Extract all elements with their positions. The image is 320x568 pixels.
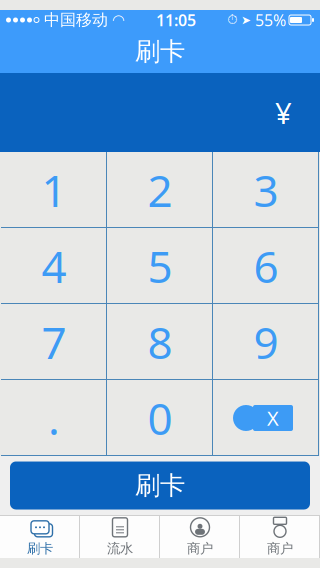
staticText: 商户 [267,540,293,557]
staticText: 4 [41,237,66,295]
staticText: . [48,389,60,447]
button[interactable]: 商户 [240,515,320,558]
staticText: ¥ [275,93,292,132]
staticText: 8 [147,313,172,371]
button[interactable]: 8 [107,304,213,380]
staticText: 刷卡 [27,540,53,557]
button[interactable]: . [1,380,107,456]
button[interactable]: 7 [1,304,107,380]
button[interactable]: 6 [213,228,319,304]
staticText: X [267,405,279,431]
button[interactable]: 2 [107,152,213,228]
staticText: 55% [255,9,286,31]
staticText: 中国移动 [44,10,108,30]
staticText: 流水 [107,540,133,557]
staticText: 3 [253,161,278,219]
staticText: 9 [253,313,278,371]
button[interactable]: 刷卡 [10,461,310,509]
staticText: 刷卡 [135,36,185,67]
button[interactable]: 9 [213,304,319,380]
staticText: 刷卡 [135,470,185,501]
button[interactable]: Delete [213,380,319,456]
button[interactable]: 流水 [80,515,160,558]
staticText: 5 [147,237,172,295]
button[interactable]: 5 [107,228,213,304]
staticText: 11:05 [156,9,196,31]
button[interactable]: 1 [1,152,107,228]
staticText: 1 [41,161,66,219]
staticText: 6 [253,237,278,295]
staticText: 0 [147,389,172,447]
button[interactable]: 0 [107,380,213,456]
staticText: ⏱ [227,13,237,26]
staticText: ◠ [112,12,125,28]
button[interactable]: 3 [213,152,319,228]
button[interactable]: 4 [1,228,107,304]
staticText: ➤ [241,13,251,27]
button[interactable]: 刷卡 [0,515,80,558]
staticText: 2 [147,161,172,219]
button[interactable]: 商户 [160,515,240,558]
staticText: 7 [41,313,66,371]
staticText: 商户 [187,540,213,557]
